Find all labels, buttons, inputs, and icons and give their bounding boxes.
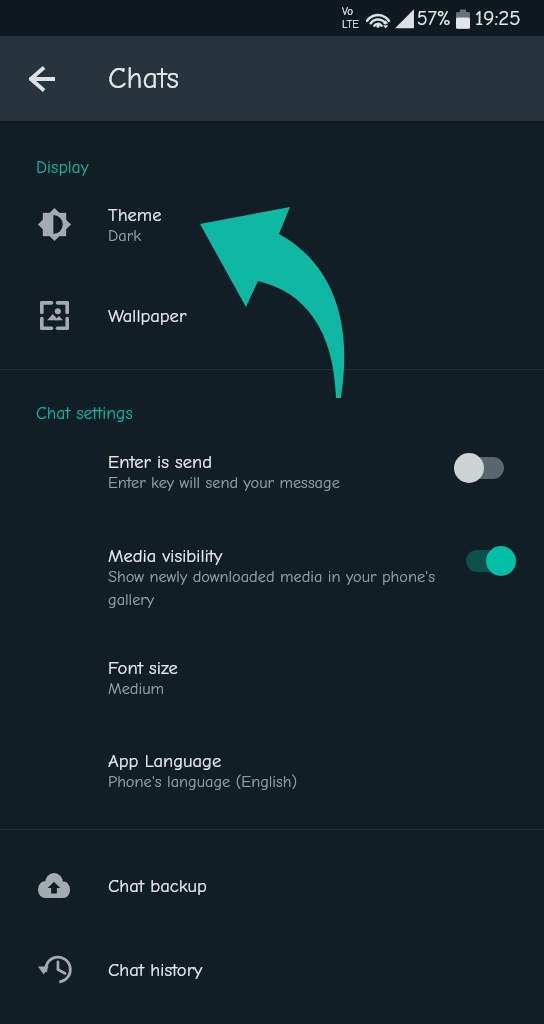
staticText: Vo: [342, 5, 354, 18]
staticText: Enter is send: [108, 451, 212, 472]
staticText: Display: [36, 157, 89, 177]
button[interactable]: Chat backup: [0, 853, 544, 917]
staticText: Chat history: [108, 959, 203, 980]
staticText: Show newly downloaded media in your phon…: [108, 567, 436, 609]
button[interactable]: Toggle on: [466, 546, 516, 576]
button[interactable]: Enter is send: [0, 447, 544, 509]
button[interactable]: App Language: [0, 746, 544, 808]
staticText: Dark: [108, 226, 142, 245]
staticText: 19:25: [475, 6, 521, 30]
staticText: Media visibility: [108, 545, 223, 566]
button[interactable]: Wallpaper: [0, 283, 544, 347]
button[interactable]: Font size: [0, 653, 544, 715]
staticText: Medium: [108, 679, 164, 698]
staticText: App Language: [108, 750, 222, 771]
button[interactable]: Theme: [0, 192, 544, 256]
staticText: Phone's language (English): [108, 772, 298, 791]
button[interactable]: Chat history: [0, 937, 544, 1001]
staticText: Enter key will send your message: [108, 473, 340, 492]
staticText: 57%: [417, 7, 451, 29]
staticText: Font size: [108, 657, 178, 678]
staticText: Wallpaper: [108, 305, 187, 326]
button[interactable]: Back: [14, 51, 70, 107]
staticText: Chats: [108, 61, 180, 96]
staticText: LTE: [342, 18, 359, 31]
button[interactable]: Media visibility: [0, 541, 544, 627]
staticText: Chat settings: [36, 403, 133, 423]
button[interactable]: Toggle off: [454, 453, 504, 483]
staticText: Theme: [108, 204, 162, 225]
staticText: Chat backup: [108, 875, 207, 896]
